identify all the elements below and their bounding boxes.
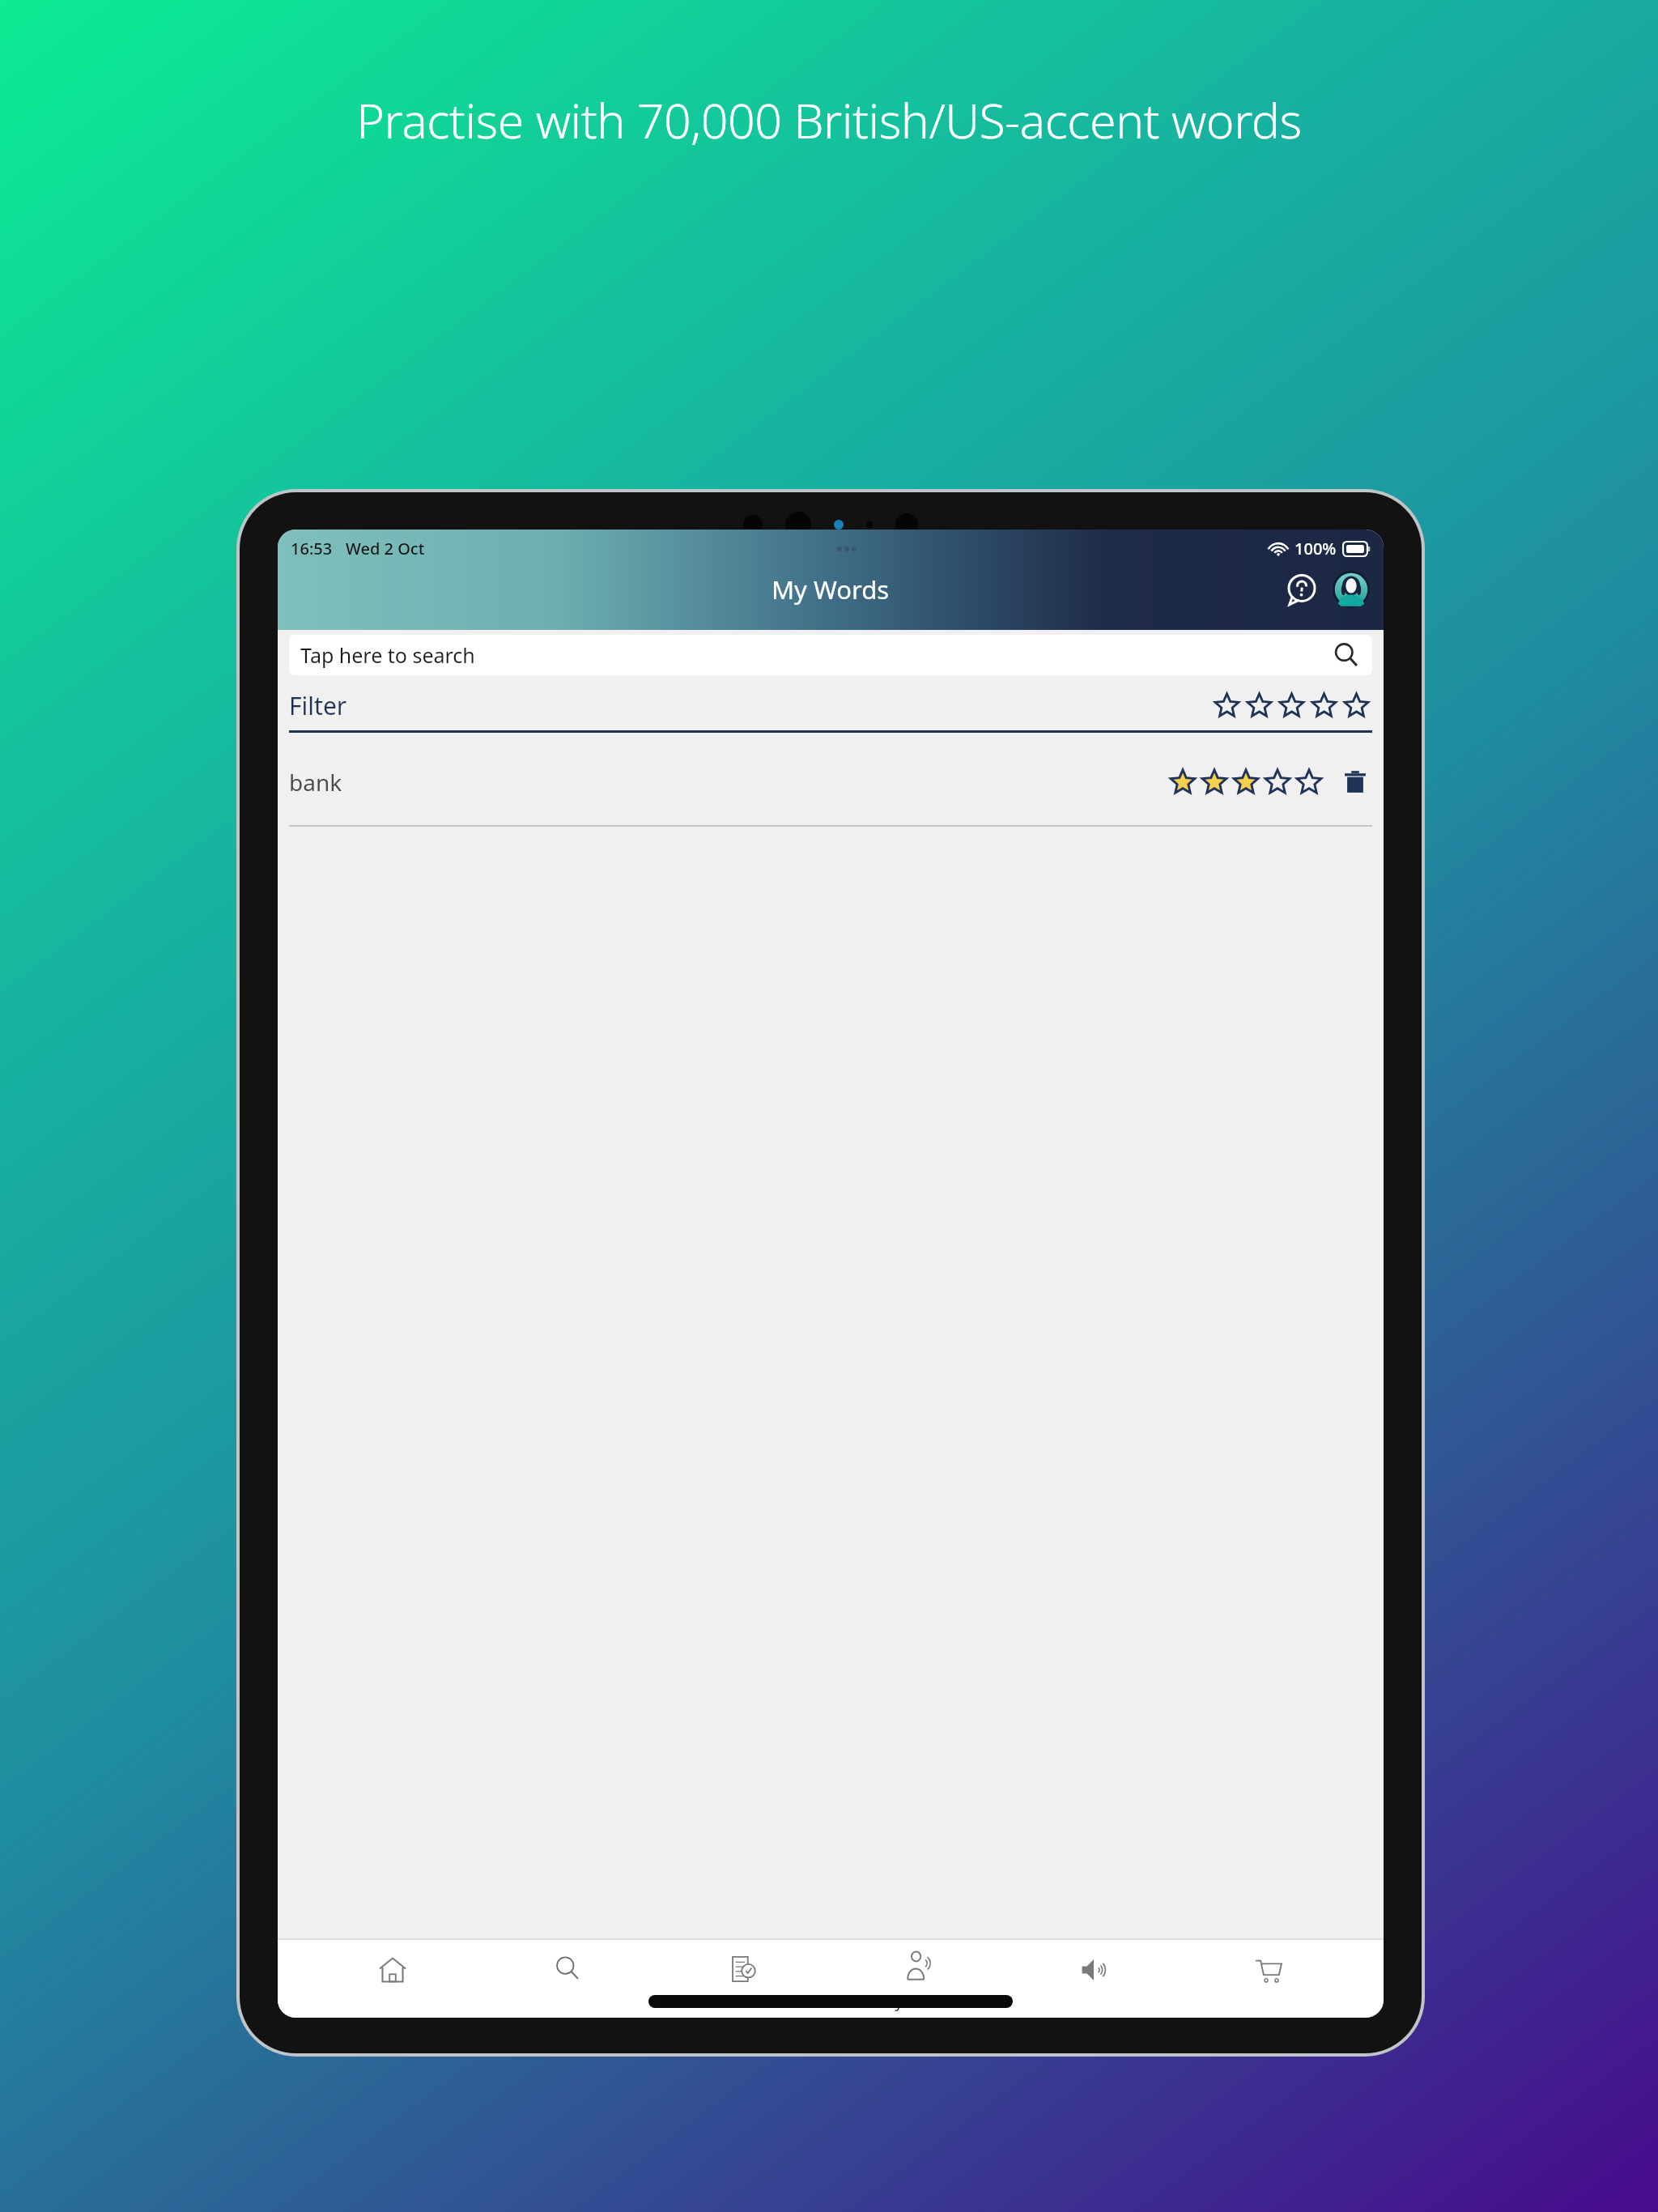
other: Search xyxy=(1330,639,1363,671)
button[interactable]: Shop xyxy=(1208,1945,1329,2018)
button[interactable]: Help xyxy=(1283,571,1320,608)
staticText: Practise with 70,000 British/US-accent w… xyxy=(45,87,1613,152)
staticText: My Words xyxy=(880,1990,956,2012)
button[interactable]: Rate 3 xyxy=(1231,768,1261,797)
button[interactable]: Filter star xyxy=(1244,691,1273,720)
button[interactable]: Rate 1 xyxy=(1168,768,1197,797)
staticText: Filter xyxy=(289,689,347,722)
button[interactable]: Sounds xyxy=(1033,1945,1154,2018)
button[interactable]: bank xyxy=(278,757,1384,807)
staticText: 16:53 xyxy=(291,538,333,559)
button[interactable]: Rate 2 xyxy=(1200,768,1229,797)
button[interactable]: Filter star xyxy=(1309,691,1338,720)
button[interactable]: Tap here to search xyxy=(289,635,1372,675)
button[interactable]: Delete xyxy=(1340,767,1371,798)
staticText: 100% xyxy=(1295,538,1337,559)
staticText: Wed 2 Oct xyxy=(346,538,425,559)
button[interactable]: My Words xyxy=(857,1945,979,2018)
button[interactable]: Search xyxy=(507,1945,628,2018)
button[interactable]: Filter star xyxy=(1277,691,1306,720)
staticText: My Words xyxy=(772,572,890,606)
button[interactable]: Filter star xyxy=(1212,691,1241,720)
button[interactable]: Rate 5 xyxy=(1295,768,1324,797)
button[interactable]: Filter xyxy=(278,680,1384,730)
button[interactable]: Tests xyxy=(682,1945,804,2018)
button[interactable]: Profile xyxy=(1332,570,1371,609)
button[interactable]: Home xyxy=(332,1945,453,2018)
button[interactable]: Rate 4 xyxy=(1263,768,1292,797)
staticText: bank xyxy=(289,767,342,798)
button[interactable]: Filter star xyxy=(1341,691,1371,720)
staticText: Tap here to search xyxy=(300,641,475,669)
